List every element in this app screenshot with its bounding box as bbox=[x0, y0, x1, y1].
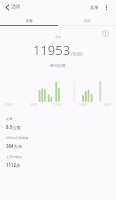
staticText: 消耗的活动能量 bbox=[6, 136, 29, 140]
staticText: 1112步 bbox=[6, 162, 21, 168]
staticText: 18:00 bbox=[79, 103, 87, 107]
staticText: 今天 bbox=[55, 35, 61, 39]
button[interactable]: More options bbox=[100, 1, 112, 13]
staticText: 364大卡 bbox=[6, 143, 23, 149]
staticText: 共享 bbox=[90, 5, 99, 10]
button[interactable]: 步数 bbox=[0, 15, 58, 26]
staticText: 活动 bbox=[11, 4, 21, 10]
staticText: 步数 bbox=[26, 19, 33, 23]
button[interactable]: 距离 bbox=[0, 115, 116, 134]
staticText: 00:00 bbox=[5, 103, 13, 107]
staticText: 24:00 bbox=[103, 103, 111, 107]
staticText: 锻炼 bbox=[84, 19, 91, 23]
button[interactable]: 锻炼 bbox=[58, 15, 116, 26]
staticText: 每日步数 bbox=[50, 63, 66, 68]
staticText: 距离 bbox=[6, 117, 13, 121]
button[interactable]: 上升的楼层 bbox=[0, 153, 116, 172]
staticText: /6000 bbox=[71, 51, 83, 57]
staticText: 11953 bbox=[33, 41, 71, 59]
button[interactable]: 共享 bbox=[87, 1, 101, 13]
staticText: 06:00 bbox=[30, 103, 38, 107]
staticText: 8.5公里 bbox=[6, 124, 21, 130]
button[interactable]: Back bbox=[0, 0, 14, 14]
button[interactable]: Info bbox=[99, 27, 111, 39]
staticText: 上升的楼层 bbox=[6, 155, 22, 159]
staticText: 12:00 bbox=[54, 103, 62, 107]
button[interactable]: 消耗的活动能量 bbox=[0, 134, 116, 153]
